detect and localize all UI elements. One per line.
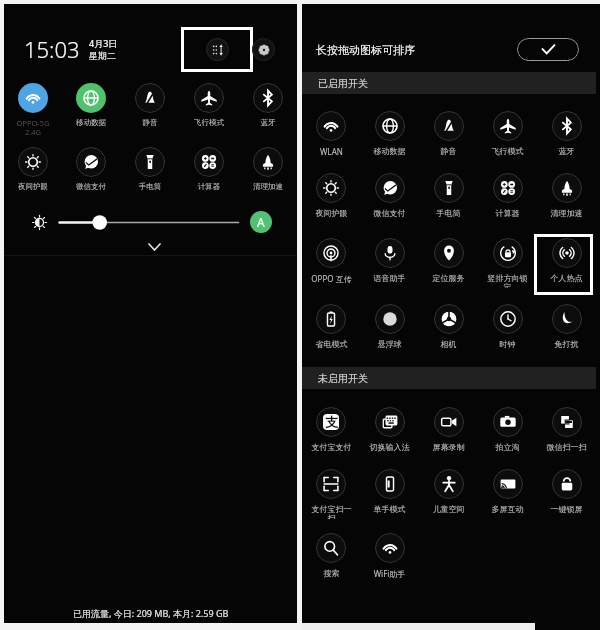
button[interactable]: 定位服务 [419, 238, 478, 288]
button[interactable]: 计算器 [179, 147, 238, 205]
button[interactable]: OPPO-5G 2.4G [4, 83, 62, 141]
button[interactable]: Settings [252, 38, 275, 61]
staticText: 清理加速 [243, 182, 293, 191]
staticText: 省电模式 [308, 339, 355, 349]
staticText: 夜间护眼 [308, 208, 355, 218]
staticText: 已启用开关 [318, 77, 368, 90]
button[interactable]: 屏幕录制 [419, 407, 478, 457]
button[interactable]: 飞行模式 [478, 111, 537, 161]
staticText: 多屏互动 [484, 504, 531, 514]
button[interactable]: 移动数据 [360, 111, 419, 161]
button[interactable]: 静音 [120, 83, 179, 141]
staticText: 定位服务 [425, 273, 472, 283]
button[interactable]: 飞行模式 [179, 83, 238, 141]
button[interactable]: 切换输入法 [360, 407, 419, 457]
staticText: 儿童空间 [425, 504, 472, 514]
staticText: 星期二 [89, 50, 116, 61]
staticText: 微信支付 [66, 182, 116, 191]
staticText: 夜间护眼 [8, 182, 58, 191]
staticText: 清理加速 [543, 208, 590, 218]
button[interactable]: 免打扰 [537, 304, 596, 354]
button[interactable]: 搜索 [302, 533, 360, 583]
staticText: OPPO-5G 2.4G [8, 118, 58, 137]
staticText: 移动数据 [366, 146, 413, 156]
staticText: OPPO 互传 [308, 273, 355, 284]
staticText: 4月3日 [89, 37, 118, 49]
button[interactable]: 手电筒 [120, 147, 179, 205]
staticText: 一键锁屏 [543, 504, 590, 514]
staticText: 移动数据 [66, 118, 116, 127]
button[interactable]: Done [517, 38, 579, 61]
button[interactable]: 微信扫一扫 [537, 407, 596, 457]
button[interactable]: 夜间护眼 [4, 147, 62, 205]
staticText: 飞行模式 [184, 118, 234, 127]
button[interactable]: 计算器 [478, 173, 537, 223]
button[interactable]: 一键锁屏 [537, 469, 596, 519]
button[interactable] [59, 212, 239, 233]
button[interactable]: 省电模式 [302, 304, 360, 354]
staticText: 蓝牙 [243, 118, 293, 127]
button[interactable]: 多屏互动 [478, 469, 537, 519]
button[interactable]: 相机 [419, 304, 478, 354]
button[interactable]: 支 [302, 407, 360, 457]
button[interactable]: WLAN [302, 111, 360, 161]
button[interactable]: 蓝牙 [238, 83, 297, 141]
button[interactable]: 儿童空间 [419, 469, 478, 519]
button[interactable]: Brightness [32, 215, 47, 230]
button[interactable]: 夜间护眼 [302, 173, 360, 223]
staticText: 相机 [425, 339, 472, 349]
button[interactable]: Edit quick settings [181, 27, 253, 72]
staticText: 静音 [125, 118, 175, 127]
button[interactable]: A [250, 211, 272, 233]
staticText: 悬浮球 [366, 339, 413, 349]
button[interactable]: Expand [143, 239, 165, 255]
staticText: 静音 [425, 146, 472, 156]
button[interactable]: 清理加速 [537, 173, 596, 223]
staticText: 支付宝扫一扫 [308, 504, 355, 519]
staticText: 飞行模式 [484, 146, 531, 156]
staticText: 个人热点 [543, 273, 590, 283]
button[interactable]: 微信支付 [62, 147, 120, 205]
staticText: A [257, 214, 265, 230]
staticText: 15:03 [24, 34, 80, 64]
staticText: 切换输入法 [366, 442, 413, 452]
button[interactable]: 清理加速 [238, 147, 297, 205]
staticText: 时钟 [484, 339, 531, 349]
button[interactable]: WiFi助手 [360, 533, 419, 583]
staticText: 未启用开关 [318, 372, 368, 385]
staticText: 竖排方向锁定 [484, 273, 531, 288]
button[interactable]: 静音 [419, 111, 478, 161]
staticText: 搜索 [308, 568, 355, 578]
staticText: 拍立淘 [484, 442, 531, 452]
button[interactable]: 单手模式 [360, 469, 419, 519]
staticText: 已用流量, 今日: 209 MB, 本月: 2.59 GB [73, 607, 229, 619]
button[interactable]: 语音助手 [360, 238, 419, 288]
staticText: 支 [325, 414, 338, 430]
button[interactable]: 移动数据 [62, 83, 120, 141]
staticText: 手电筒 [125, 182, 175, 191]
staticText: 语音助手 [366, 273, 413, 283]
staticText: WLAN [308, 146, 355, 157]
staticText: WiFi助手 [366, 568, 413, 579]
button[interactable]: 支付宝扫一扫 [302, 469, 360, 519]
staticText: 手电筒 [425, 208, 472, 218]
staticText: 微信扫一扫 [543, 442, 590, 452]
staticText: 免打扰 [543, 339, 590, 349]
staticText: 微信支付 [366, 208, 413, 218]
button[interactable]: OPPO 互传 [302, 238, 360, 288]
button[interactable]: 手电筒 [419, 173, 478, 223]
staticText: 计算器 [184, 182, 234, 191]
button[interactable]: 蓝牙 [537, 111, 596, 161]
staticText: 蓝牙 [543, 146, 590, 156]
staticText: 支付宝支付 [308, 442, 355, 452]
staticText: 屏幕录制 [425, 442, 472, 452]
button[interactable]: 微信支付 [360, 173, 419, 223]
button[interactable]: 时钟 [478, 304, 537, 354]
button[interactable]: 个人热点 [537, 238, 596, 288]
staticText: 长按拖动图标可排序 [316, 43, 415, 57]
button[interactable]: 悬浮球 [360, 304, 419, 354]
staticText: 单手模式 [366, 504, 413, 514]
button[interactable]: 竖排方向锁定 [478, 238, 537, 288]
staticText: 计算器 [484, 208, 531, 218]
button[interactable]: 拍立淘 [478, 407, 537, 457]
